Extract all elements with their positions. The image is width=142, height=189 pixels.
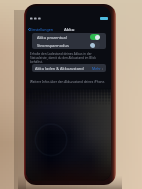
button[interactable]: Akku prozentual <box>37 33 100 41</box>
staticText: Weitere Infos über den Akkuzustand deine… <box>30 80 106 84</box>
staticText: Akku <box>64 27 75 32</box>
button[interactable]: Akku laden & Akkuzustand <box>35 64 104 72</box>
button[interactable]: Zurück zu Einstellungen <box>28 27 53 32</box>
button[interactable]: Stromsparmodus <box>37 41 100 49</box>
staticText: Erhalte den Ladestand deines Akkus in de… <box>30 52 107 64</box>
staticText: › <box>102 66 104 71</box>
staticText: Mehr <box>92 66 101 71</box>
staticText: Akku laden & Akkuzustand <box>35 66 84 71</box>
staticText: Akku prozentual <box>37 35 67 40</box>
staticText: Einstellungen <box>30 27 53 32</box>
staticText: Stromsparmodus <box>37 43 69 48</box>
